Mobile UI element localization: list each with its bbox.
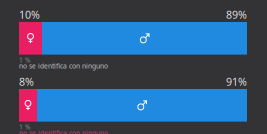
staticText: 1 %	[19, 123, 31, 131]
staticText: 10%	[19, 7, 40, 22]
staticText: 91%	[226, 74, 247, 89]
staticText: 1 %	[19, 56, 31, 64]
staticText: 89%	[226, 7, 247, 22]
staticText: no se identifica con ninguno	[19, 62, 108, 70]
staticText: 8%	[19, 74, 34, 89]
button[interactable]: 10%	[0, 0, 267, 134]
staticText: no se identifica con ninguno	[19, 129, 108, 134]
button[interactable]: 8%	[0, 0, 267, 134]
